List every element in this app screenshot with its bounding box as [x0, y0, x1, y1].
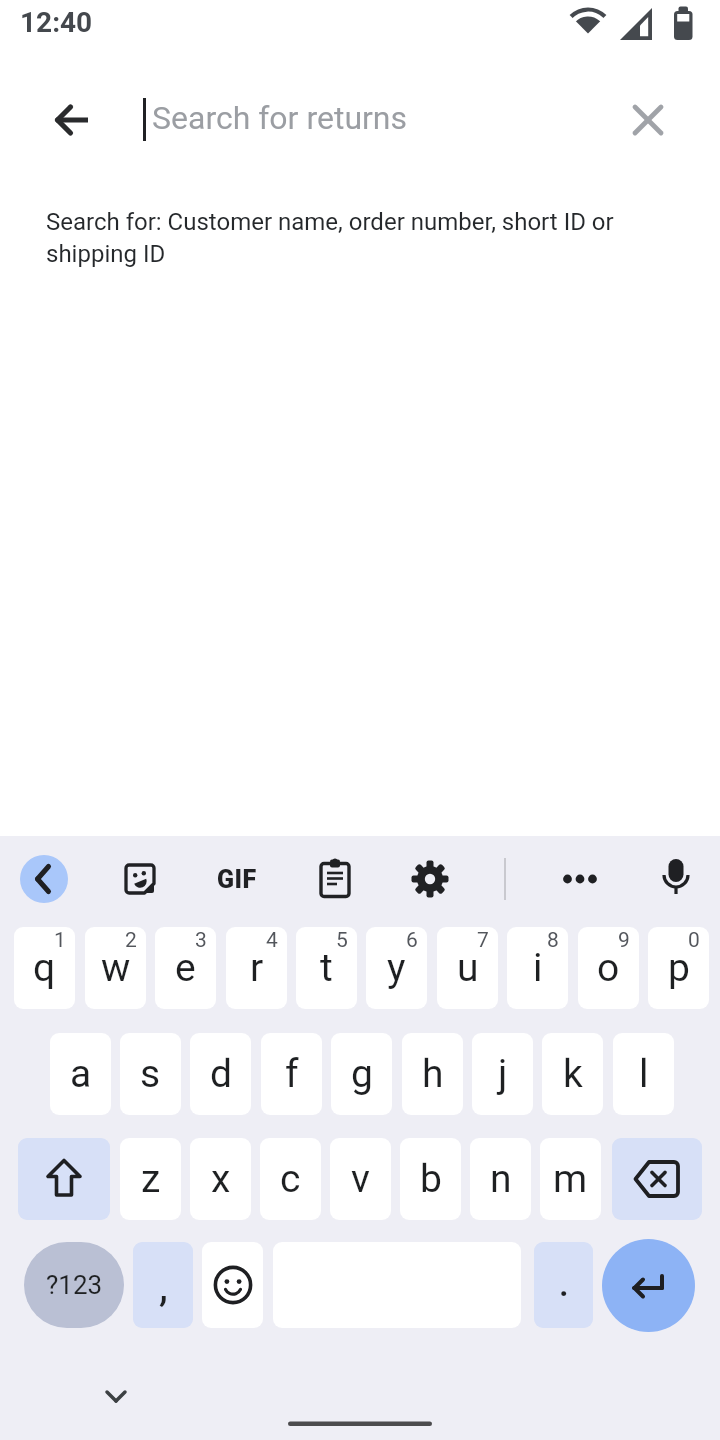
button[interactable]: [116, 855, 164, 903]
staticText: 2: [125, 928, 137, 953]
staticText: t: [320, 945, 333, 991]
staticText: b: [420, 1156, 442, 1202]
staticText: h: [422, 1051, 444, 1097]
staticText: ,: [159, 1259, 168, 1312]
staticText: Search for: Customer name, order number,…: [46, 208, 614, 236]
button[interactable]: ?123: [24, 1242, 124, 1328]
button[interactable]: s: [120, 1033, 181, 1115]
button[interactable]: GIF: [213, 855, 261, 903]
staticText: m: [553, 1156, 588, 1202]
staticText: k: [563, 1051, 583, 1097]
button[interactable]: o: [578, 927, 639, 1009]
staticText: 4: [266, 928, 278, 953]
button[interactable]: [602, 1239, 695, 1332]
staticText: 3: [195, 928, 207, 953]
staticText: p: [668, 945, 690, 991]
button[interactable]: t: [296, 927, 357, 1009]
staticText: .: [558, 1254, 570, 1307]
button[interactable]: c: [260, 1138, 321, 1220]
button[interactable]: e: [155, 927, 216, 1009]
button[interactable]: [18, 1138, 110, 1220]
staticText: f: [285, 1051, 299, 1097]
staticText: e: [175, 945, 196, 991]
staticText: o: [597, 945, 620, 991]
staticText: r: [250, 945, 264, 991]
staticText: 5: [336, 928, 348, 953]
button[interactable]: [556, 855, 604, 903]
staticText: i: [533, 945, 543, 991]
button[interactable]: d: [190, 1033, 251, 1115]
button[interactable]: .: [534, 1242, 593, 1328]
button[interactable]: [406, 855, 454, 903]
button[interactable]: u: [437, 927, 498, 1009]
button[interactable]: [311, 855, 359, 903]
button[interactable]: i: [507, 927, 568, 1009]
staticText: 8: [547, 928, 559, 953]
button[interactable]: l: [613, 1033, 674, 1115]
button[interactable]: q: [14, 927, 75, 1009]
button[interactable]: k: [542, 1033, 603, 1115]
button[interactable]: z: [120, 1138, 181, 1220]
staticText: j: [498, 1051, 508, 1097]
button[interactable]: b: [400, 1138, 461, 1220]
button[interactable]: a: [50, 1033, 111, 1115]
staticText: x: [211, 1156, 231, 1202]
staticText: 7: [477, 928, 489, 953]
button[interactable]: w: [85, 927, 146, 1009]
button[interactable]: x: [190, 1138, 251, 1220]
button[interactable]: p: [648, 927, 709, 1009]
staticText: ?123: [46, 1270, 103, 1300]
button[interactable]: [612, 1138, 702, 1220]
button[interactable]: n: [470, 1138, 531, 1220]
staticText: 12:40: [20, 6, 93, 39]
button[interactable]: [624, 96, 672, 144]
button[interactable]: h: [402, 1033, 463, 1115]
staticText: Search for returns: [152, 99, 408, 137]
staticText: 0: [688, 928, 700, 953]
button[interactable]: [202, 1242, 263, 1328]
button[interactable]: y: [366, 927, 427, 1009]
staticText: s: [140, 1051, 161, 1097]
button[interactable]: [652, 855, 700, 903]
staticText: v: [351, 1156, 370, 1202]
staticText: c: [280, 1156, 301, 1202]
button[interactable]: m: [540, 1138, 601, 1220]
staticText: 9: [618, 928, 630, 953]
button[interactable]: ,: [133, 1242, 193, 1328]
staticText: g: [351, 1051, 373, 1097]
button[interactable]: [48, 96, 96, 144]
button[interactable]: [20, 855, 68, 903]
button[interactable]: f: [261, 1033, 322, 1115]
button[interactable]: g: [331, 1033, 392, 1115]
staticText: z: [141, 1156, 161, 1202]
button[interactable]: v: [330, 1138, 391, 1220]
staticText: y: [387, 945, 406, 991]
staticText: u: [457, 945, 479, 991]
staticText: d: [210, 1051, 232, 1097]
staticText: a: [70, 1051, 92, 1097]
staticText: 6: [406, 928, 418, 953]
staticText: 1: [54, 928, 66, 953]
staticText: GIF: [217, 865, 257, 894]
staticText: q: [33, 945, 56, 991]
staticText: l: [639, 1051, 649, 1097]
button[interactable]: r: [226, 927, 287, 1009]
staticText: w: [101, 945, 131, 991]
staticText: n: [490, 1156, 512, 1202]
staticText: shipping ID: [46, 240, 166, 268]
button[interactable]: j: [472, 1033, 533, 1115]
